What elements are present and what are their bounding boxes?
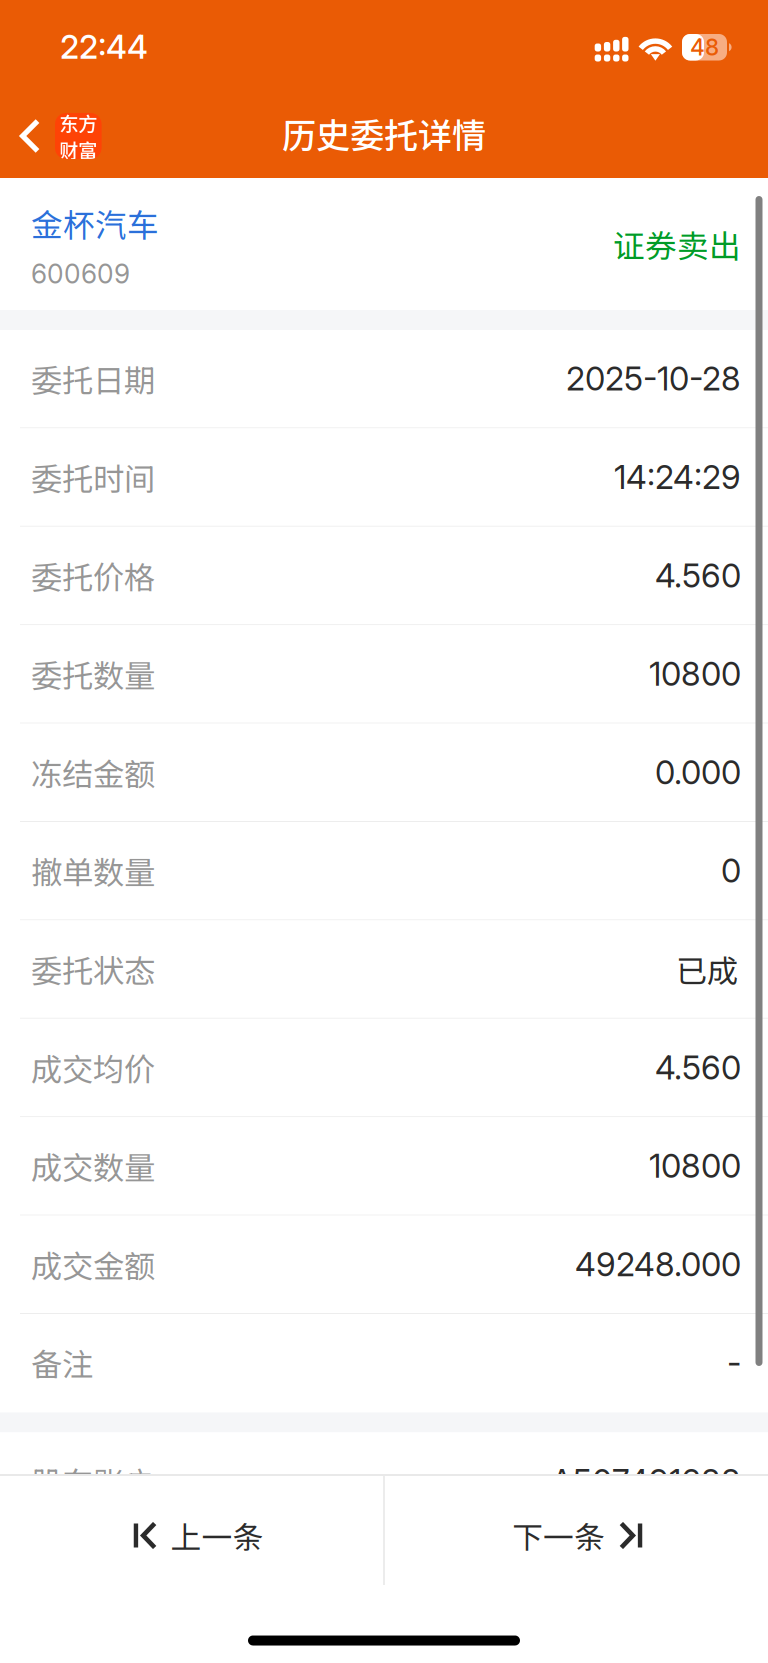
staticText: 10800 [649,654,741,694]
staticText: 委托价格 [31,553,155,598]
button[interactable]: 股东账户 [0,1432,768,1531]
button[interactable]: 成交金额 [0,1216,768,1314]
staticText: 委托状态 [31,946,155,992]
staticText: 600609 [31,258,130,290]
button[interactable]: 成交均价 [0,1019,768,1117]
staticText: 东方 [59,108,97,136]
staticText: 已成 [676,946,738,992]
staticText: 备注 [31,1340,93,1385]
button[interactable]: 下一条 [385,1476,768,1585]
button[interactable]: 撤单数量 [0,822,768,920]
staticText: 49248.000 [575,1244,741,1284]
staticText: A507491688 [551,1461,741,1501]
staticText: 委托日期 [31,356,155,401]
button[interactable]: 备注 [0,1314,768,1412]
button[interactable]: 委托时间 [0,428,768,527]
staticText: 14:24:29 [614,457,741,497]
staticText: 48 [690,33,719,61]
button[interactable]: 委托状态 [0,920,768,1019]
staticText: 4.560 [655,1048,741,1087]
staticText: 财富 [59,135,97,163]
staticText: 10800 [649,1146,741,1186]
button[interactable]: 返回 [0,94,116,178]
staticText: 成交均价 [31,1045,155,1090]
staticText: 上一条 [171,1513,264,1558]
staticText: 委托时间 [31,454,155,500]
button[interactable]: 委托数量 [0,625,768,724]
staticText: 2025-10-28 [566,359,741,398]
button[interactable]: 委托价格 [0,527,768,625]
button[interactable]: 金杯汽车 [0,178,768,310]
staticText: 股东账户 [31,1458,155,1504]
staticText: 成交金额 [31,1242,155,1287]
staticText: 22:44 [60,27,148,67]
staticText: - [727,1343,741,1382]
staticText: 冻结金额 [31,750,155,795]
staticText: 0.000 [655,752,741,792]
staticText: 历史委托详情 [282,108,486,158]
staticText: 下一条 [512,1513,605,1558]
staticText: 撤单数量 [31,848,155,893]
staticText: 委托数量 [31,651,155,697]
button[interactable]: 成交数量 [0,1117,768,1216]
button[interactable]: 冻结金额 [0,724,768,822]
staticText: 0 [721,851,741,890]
staticText: 证券卖出 [613,221,741,267]
button[interactable]: 上一条 [0,1476,383,1585]
staticText: 成交数量 [31,1143,155,1189]
staticText: 4.560 [655,556,741,595]
staticText: 金杯汽车 [31,200,159,246]
button[interactable]: 委托日期 [0,330,768,428]
